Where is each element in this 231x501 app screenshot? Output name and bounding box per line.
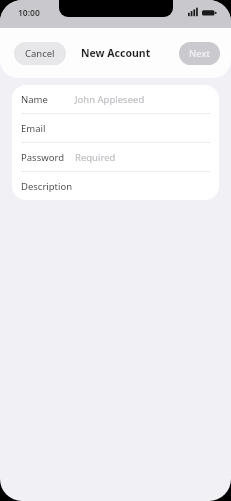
- staticText: New Account: [81, 46, 151, 60]
- button[interactable]: Password: [12, 143, 219, 171]
- staticText: 10:00: [18, 7, 40, 19]
- button[interactable]: Description: [12, 172, 219, 200]
- button[interactable]: Name: [12, 85, 219, 113]
- staticText: Required: [75, 151, 116, 164]
- staticText: Next: [189, 47, 210, 60]
- button[interactable]: Cancel: [14, 42, 66, 65]
- staticText: John Appleseed: [75, 93, 145, 106]
- staticText: Cancel: [25, 47, 55, 60]
- button[interactable]: Next: [179, 42, 220, 65]
- button[interactable]: Email: [12, 114, 219, 142]
- staticText: Description: [21, 180, 73, 193]
- staticText: Name: [21, 93, 48, 106]
- staticText: Password: [21, 151, 64, 164]
- staticText: Email: [21, 122, 46, 135]
